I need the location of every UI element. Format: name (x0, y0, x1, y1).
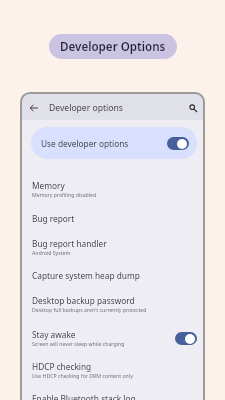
staticText: Use HDCP checking for DRM content only (32, 372, 133, 379)
staticText: Stay awake (32, 329, 76, 340)
staticText: Memory profiling disabled (32, 191, 97, 198)
staticText: Enable Bluetooth stack log (32, 393, 136, 400)
button[interactable]: Bug report handler (20, 236, 205, 258)
staticText: Android System (32, 249, 71, 256)
staticText: Desktop full backups aren't currently pr… (32, 306, 147, 313)
button[interactable]: Enable Bluetooth stack log (20, 391, 205, 400)
staticText: Capture system heap dump (32, 270, 140, 281)
button[interactable]: Developer Options (49, 34, 177, 59)
staticText: Desktop backup password (32, 295, 135, 306)
button[interactable]: Toggle setting (175, 332, 197, 345)
button[interactable]: Back (26, 100, 42, 116)
button[interactable]: Bug report (20, 211, 205, 225)
button[interactable]: Capture system heap dump (20, 268, 205, 282)
button[interactable]: Stay awake (20, 327, 205, 349)
staticText: Bug report (32, 213, 75, 224)
staticText: HDCP checking (32, 361, 92, 372)
staticText: Developer Options (60, 39, 166, 55)
staticText: Memory (32, 180, 65, 191)
staticText: Screen will never sleep while charging (32, 340, 125, 347)
button[interactable]: Toggle setting (167, 137, 189, 150)
staticText: Use developer options (41, 138, 167, 149)
button[interactable]: Use developer options (31, 127, 197, 159)
button[interactable]: Memory (20, 178, 205, 200)
staticText: Developer options (49, 102, 123, 114)
staticText: Bug report handler (32, 238, 107, 249)
button[interactable]: Search (185, 100, 201, 116)
button[interactable]: HDCP checking (20, 359, 205, 381)
button[interactable]: Desktop backup password (20, 293, 205, 315)
